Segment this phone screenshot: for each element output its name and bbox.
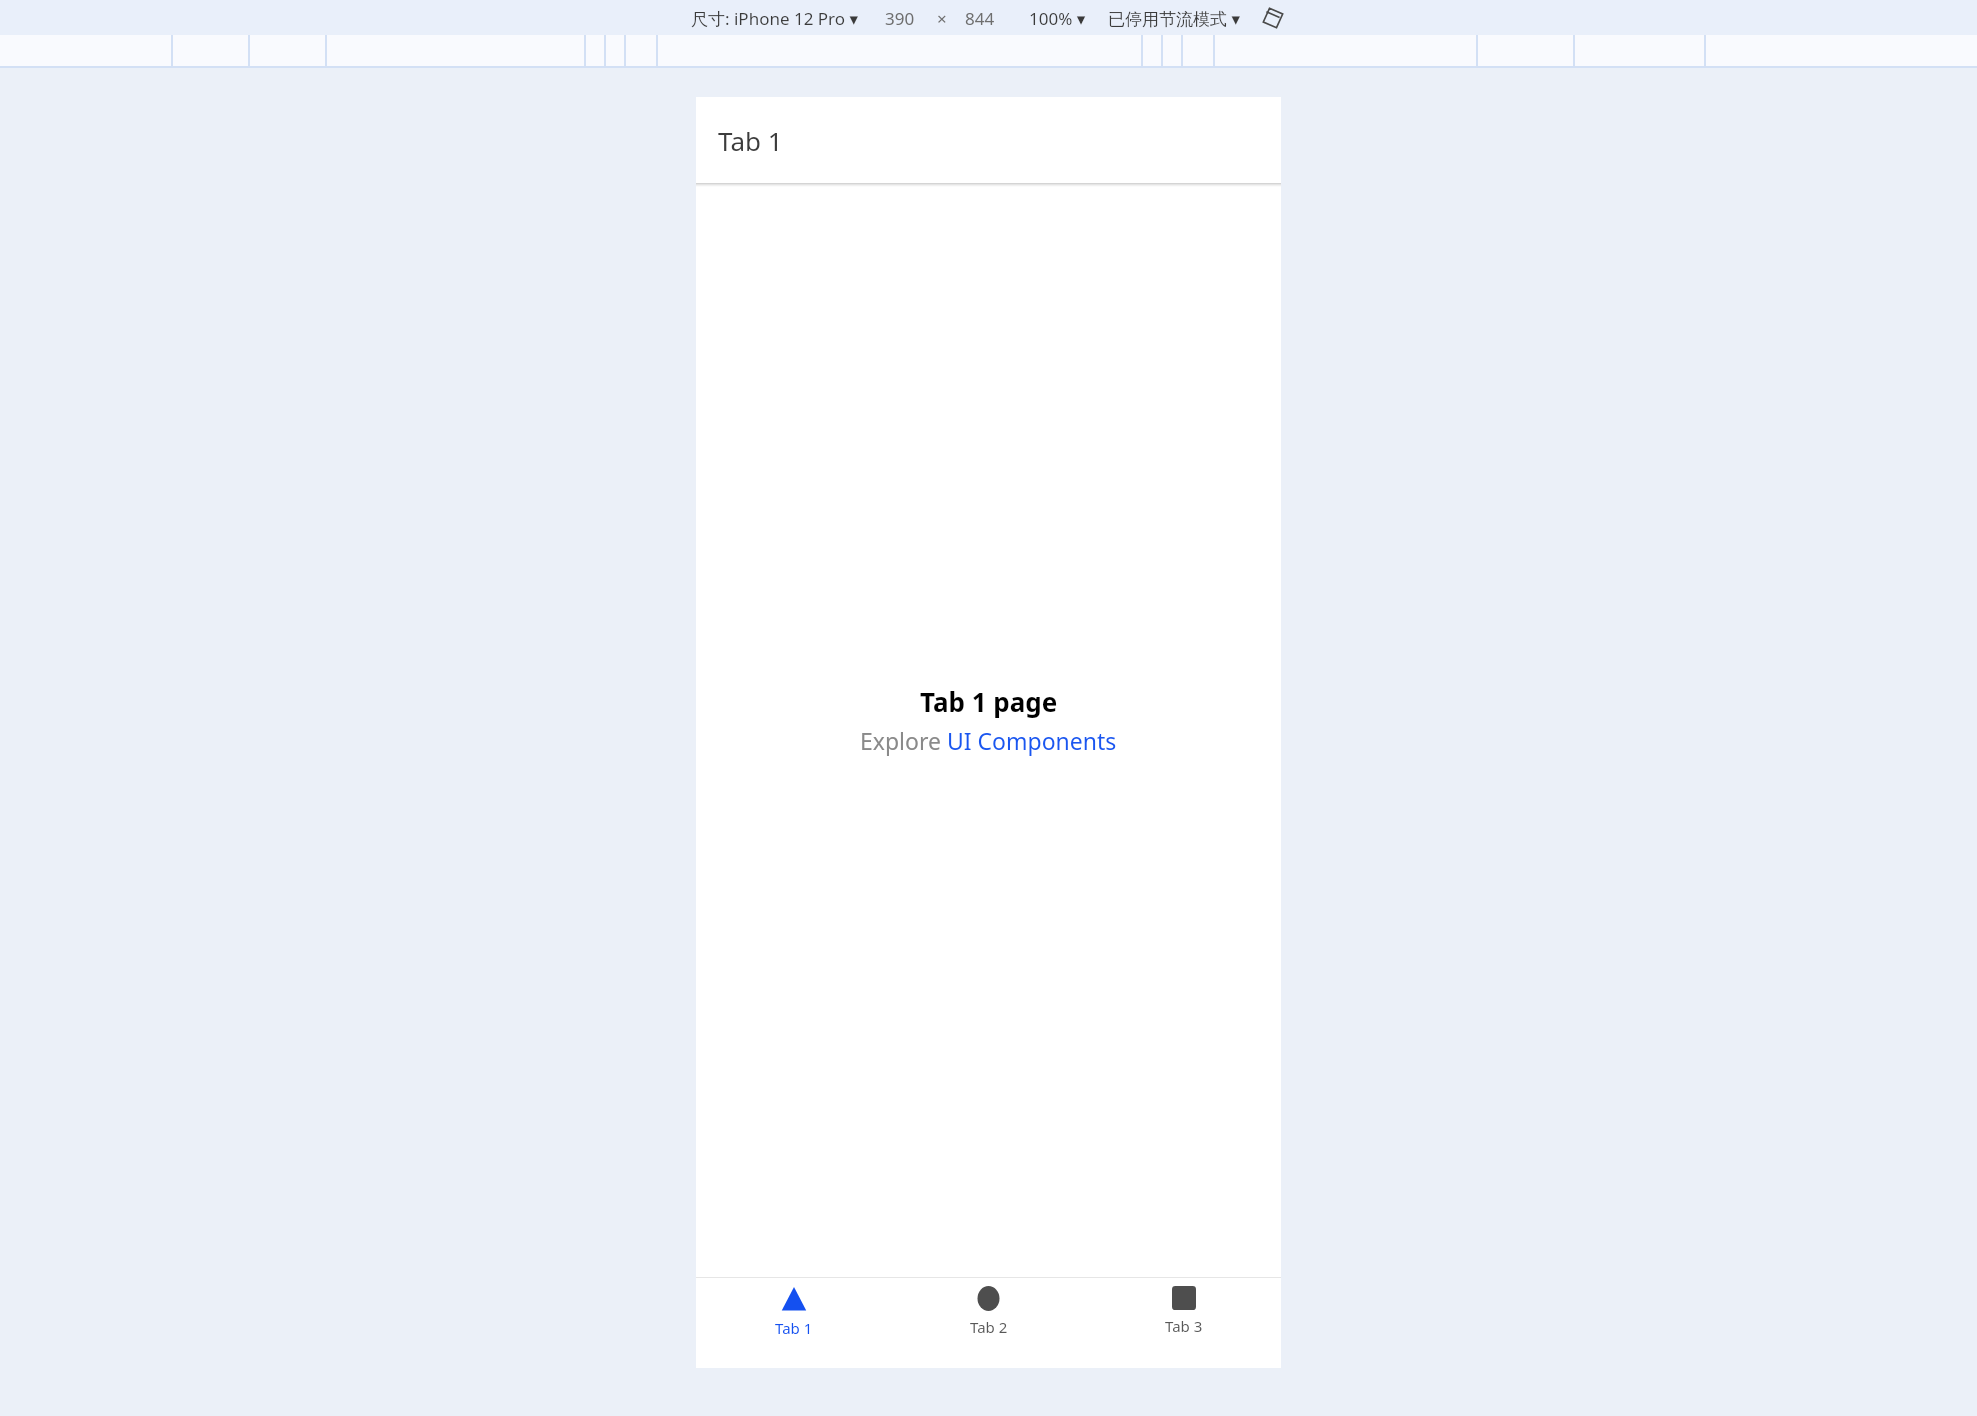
staticText: Tab 2 [970,1317,1008,1337]
button[interactable]: 已停用节流模式 ▾ [1108,7,1240,30]
staticText: Tab 1 [775,1318,813,1338]
button[interactable]: 100% ▾ [1029,7,1086,30]
button[interactable]: Rotate [1260,5,1286,31]
staticText: 390 [885,7,915,30]
button[interactable]: 尺寸: iPhone 12 Pro ▾ [691,7,859,30]
button[interactable]: Tab 2 [891,1278,1086,1368]
button[interactable]: Explore UI Components [860,725,1117,756]
button[interactable]: Tab 3 [1086,1278,1281,1368]
staticText: × [937,7,947,30]
staticText: 844 [965,7,995,30]
staticText: Explore UI Components [860,725,1117,756]
staticText: Tab 3 [1165,1316,1203,1336]
staticText: Tab 1 page [920,684,1058,719]
staticText: Tab 1 [718,123,783,158]
button[interactable]: Tab 1 [696,1278,891,1368]
